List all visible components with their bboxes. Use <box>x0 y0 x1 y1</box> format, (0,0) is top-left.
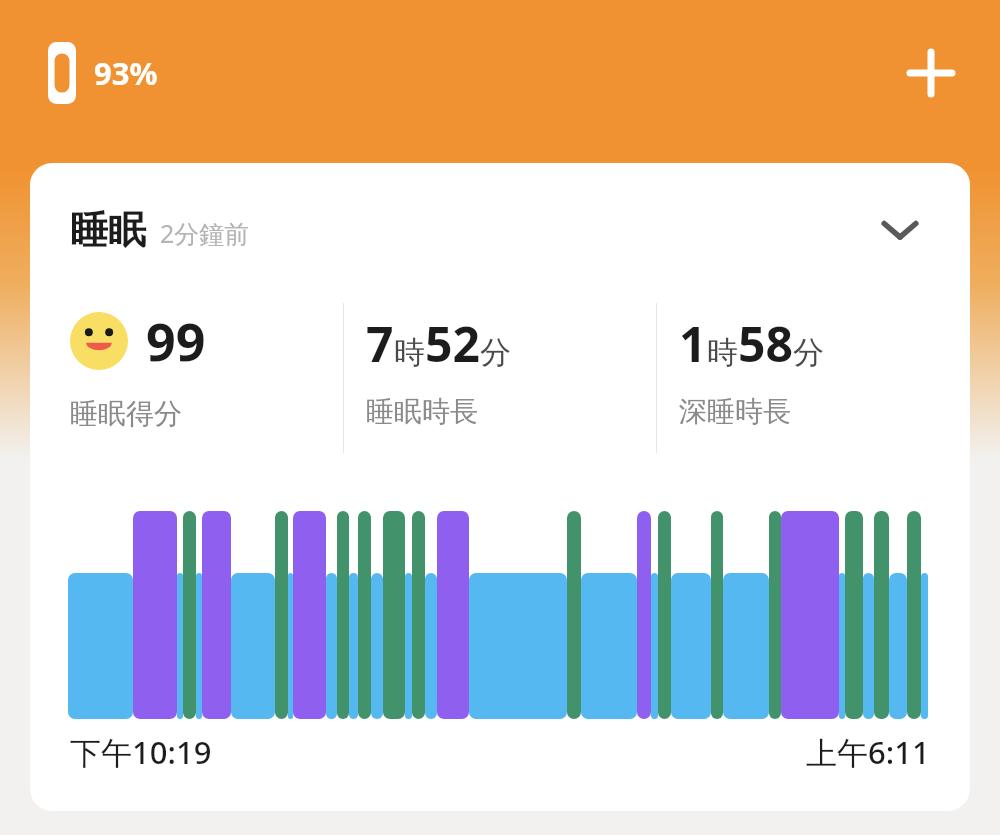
staticText: 睡眠時長 <box>366 394 478 429</box>
staticText: 分 <box>793 333 824 372</box>
staticText: 下午10:19 <box>70 731 212 773</box>
staticText: 93% <box>94 52 158 94</box>
staticText: 58 <box>738 311 793 376</box>
staticText: 睡眠 <box>70 206 146 254</box>
button[interactable]: Expand <box>870 200 930 260</box>
button[interactable]: Add <box>896 38 966 108</box>
staticText: 7 <box>366 311 394 376</box>
staticText: 時 <box>394 333 425 372</box>
staticText: 上午6:11 <box>806 731 930 773</box>
staticText: 深睡時長 <box>679 394 791 429</box>
staticText: 99 <box>146 305 206 376</box>
staticText: 2分鐘前 <box>160 216 250 250</box>
staticText: 睡眠得分 <box>70 396 182 431</box>
button[interactable]: 睡眠 <box>30 163 970 811</box>
staticText: 時 <box>707 333 738 372</box>
staticText: 1 <box>679 311 707 376</box>
staticText: 52 <box>425 311 480 376</box>
staticText: 分 <box>480 333 511 372</box>
